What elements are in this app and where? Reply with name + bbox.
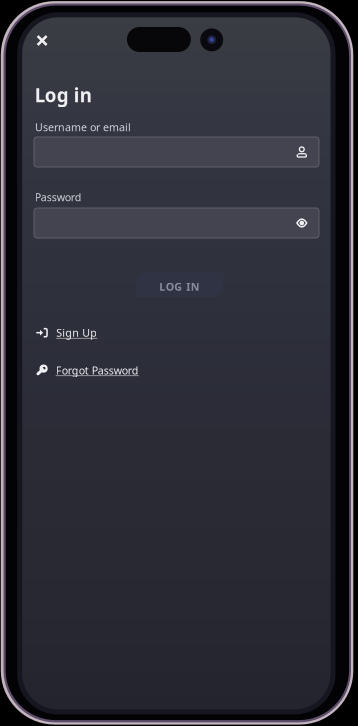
staticText: LOG IN [159, 279, 200, 294]
button[interactable]: Close [29, 27, 55, 54]
button[interactable]: LOG IN [136, 273, 223, 297]
staticText: Username or email [35, 120, 131, 134]
staticText: Sign Up [56, 326, 97, 340]
staticText: Forgot Password [56, 363, 139, 377]
button[interactable]: Sign Up [36, 326, 97, 340]
button[interactable]: Forgot Password [36, 363, 139, 377]
staticText: Password [35, 190, 82, 204]
staticText: Log in [35, 83, 92, 107]
